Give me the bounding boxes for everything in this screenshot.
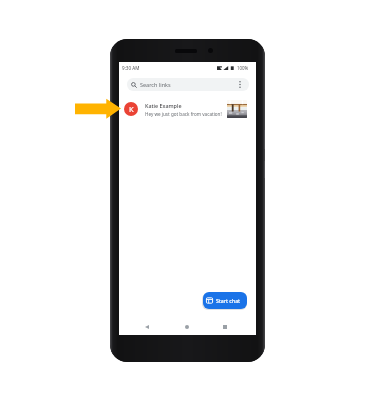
button[interactable]: Home	[179, 320, 195, 333]
button[interactable]: Back	[139, 320, 155, 333]
button[interactable]: Recent apps	[217, 320, 233, 333]
staticText: 9:30 AM	[122, 65, 140, 71]
staticText: Hey we just got back from vacation!	[145, 111, 222, 117]
button[interactable]: Search links	[127, 78, 249, 91]
staticText: K	[129, 104, 134, 114]
staticText: Search links	[140, 81, 171, 88]
button[interactable]: Start chat	[203, 292, 247, 309]
button[interactable]: K	[119, 98, 256, 119]
button[interactable]: More options	[237, 80, 243, 89]
staticText: 100%	[237, 65, 249, 71]
staticText: Katie Example	[145, 102, 182, 109]
staticText: Start chat	[216, 297, 241, 304]
